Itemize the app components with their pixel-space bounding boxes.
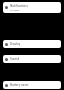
button[interactable]: Notifications	[3, 2, 61, 13]
staticText: All apps	[10, 8, 20, 11]
button[interactable]: Display	[3, 40, 61, 48]
button[interactable]: Sound	[3, 55, 61, 63]
staticText: Battery saver	[10, 83, 29, 87]
button[interactable]: Battery saver	[3, 81, 61, 89]
staticText: Display	[10, 42, 21, 46]
staticText: Notifications	[10, 4, 28, 8]
staticText: Sound	[10, 57, 20, 61]
